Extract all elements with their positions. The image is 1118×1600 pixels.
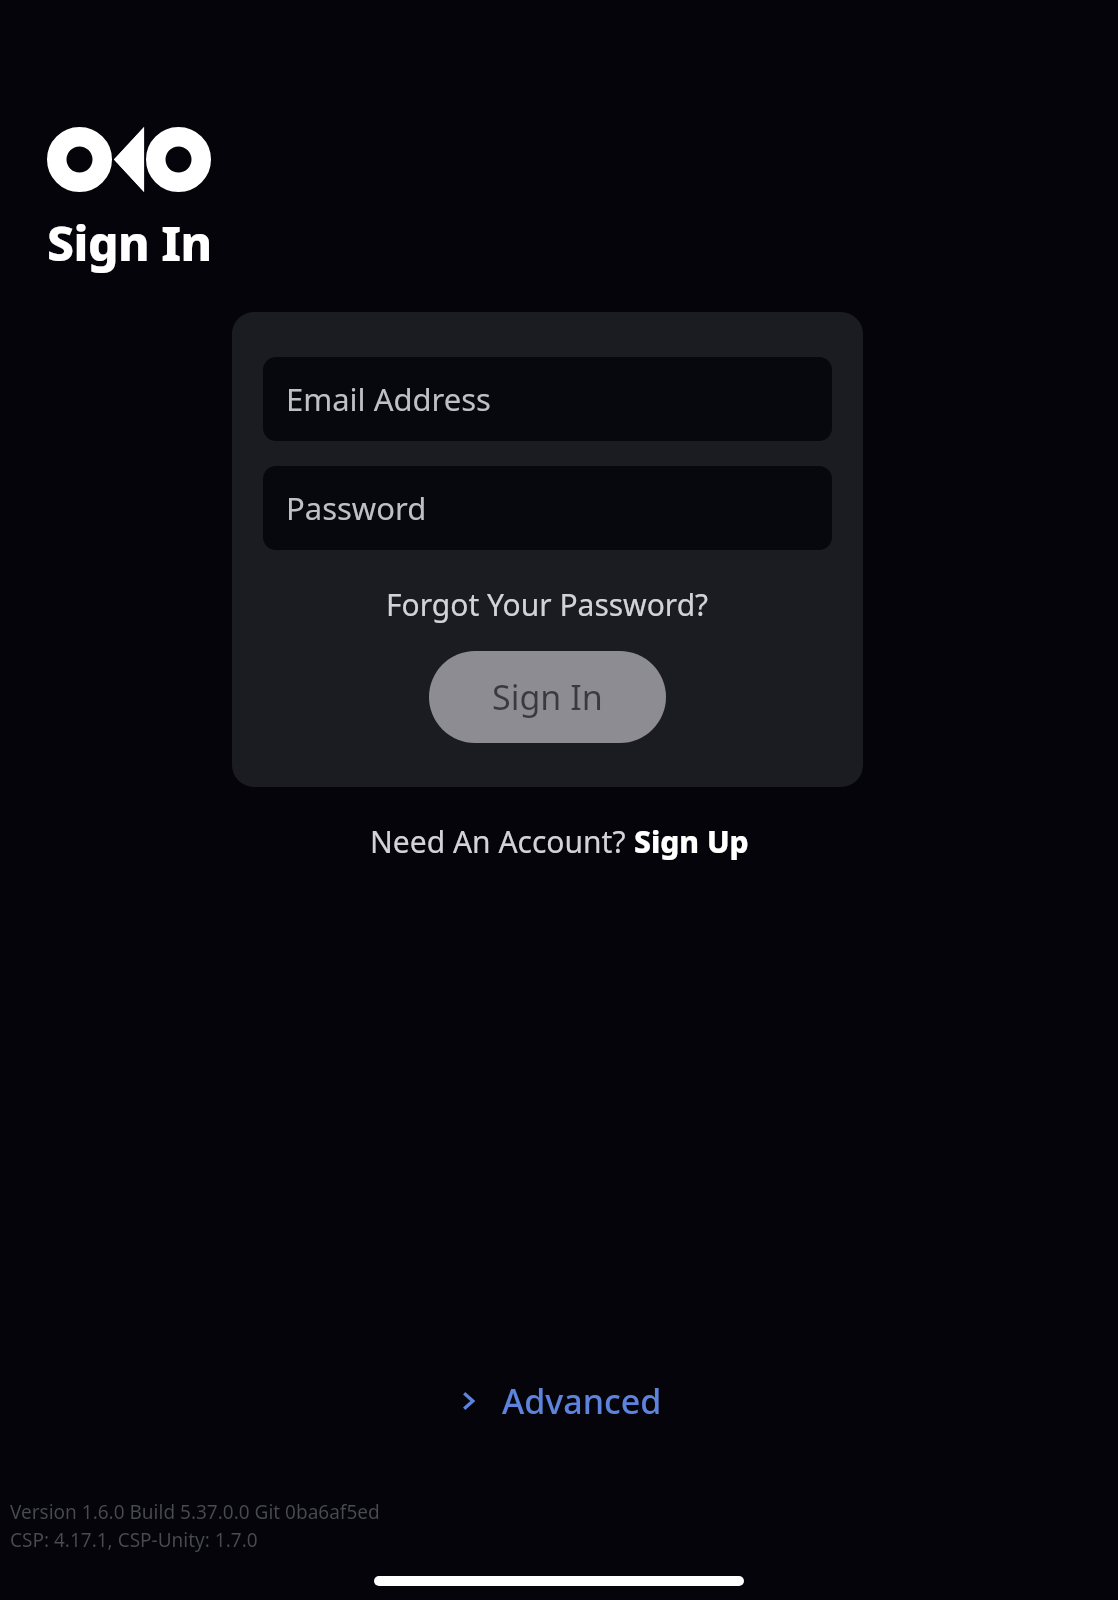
staticText: Sign In bbox=[492, 674, 603, 720]
button[interactable]: Sign In bbox=[429, 651, 666, 743]
button[interactable]: Forgot Your Password? bbox=[376, 578, 719, 631]
other: OKO logo bbox=[47, 127, 211, 192]
button[interactable]: Expand advanced options bbox=[444, 1370, 674, 1432]
staticText: Sign Up bbox=[634, 821, 749, 862]
staticText: CSP: 4.17.1, CSP-Unity: 1.7.0 bbox=[10, 1527, 258, 1553]
staticText: Advanced bbox=[502, 1378, 662, 1424]
staticText: Email Address bbox=[286, 378, 491, 420]
button[interactable]: Password bbox=[263, 466, 832, 550]
button[interactable]: Email Address bbox=[263, 357, 832, 441]
staticText: Need An Account? bbox=[370, 821, 634, 862]
staticText: Version 1.6.0 Build 5.37.0.0 Git 0ba6af5… bbox=[10, 1499, 380, 1525]
button[interactable]: Need An Account? bbox=[362, 815, 757, 868]
staticText: Sign In bbox=[47, 210, 212, 275]
staticText: Password bbox=[286, 487, 427, 529]
staticText: Forgot Your Password? bbox=[386, 584, 709, 625]
other: Expand advanced options bbox=[456, 1389, 480, 1413]
